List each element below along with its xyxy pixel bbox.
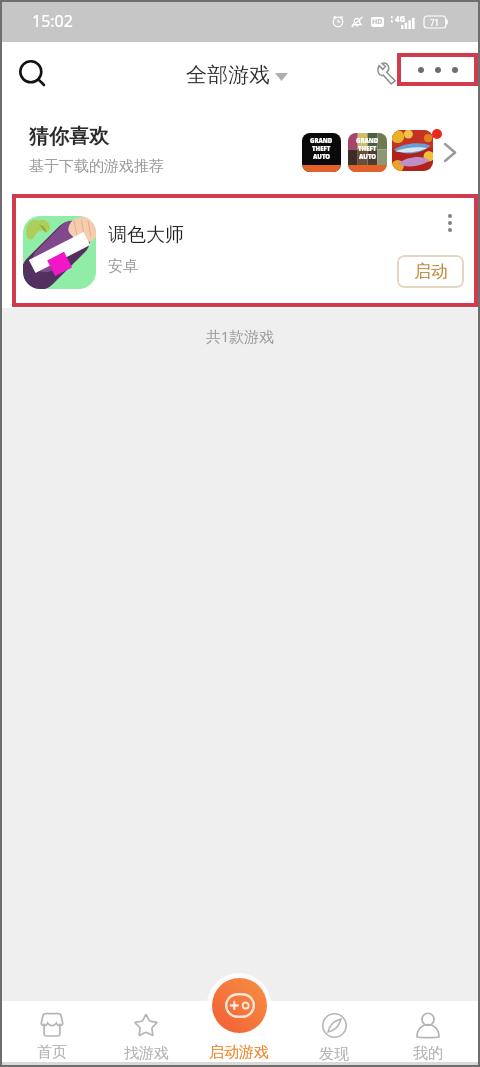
- staticText: 基于下载的游戏推荐: [29, 157, 164, 176]
- button[interactable]: 启动: [397, 255, 464, 288]
- button[interactable]: 我的: [381, 1001, 475, 1067]
- staticText: THEFT: [312, 145, 331, 153]
- button[interactable]: 首页: [5, 1001, 99, 1067]
- staticText: 4G: [395, 13, 406, 24]
- staticText: 安卓: [108, 257, 138, 276]
- button[interactable]: 发现: [287, 1001, 381, 1067]
- staticText: 71: [430, 17, 440, 28]
- button[interactable]: More: [435, 208, 465, 238]
- button[interactable]: Tools: [370, 56, 404, 90]
- staticText: 调色大师: [108, 223, 184, 247]
- button[interactable]: 找游戏: [99, 1001, 193, 1067]
- staticText: 启动游戏: [209, 1043, 269, 1062]
- button[interactable]: 调色大师: [0, 196, 480, 308]
- staticText: 发现: [319, 1045, 349, 1064]
- staticText: HD: [372, 17, 383, 27]
- staticText: 猜你喜欢: [29, 124, 109, 149]
- staticText: 共1款游戏: [0, 326, 480, 346]
- staticText: GRAND: [310, 137, 333, 145]
- staticText: AUTO: [313, 153, 331, 161]
- button[interactable]: More options: [397, 53, 478, 86]
- staticText: 启动: [414, 261, 448, 282]
- staticText: 全部游戏: [186, 62, 270, 88]
- staticText: 找游戏: [124, 1044, 169, 1063]
- staticText: AUTO: [359, 153, 377, 161]
- button[interactable]: 全部游戏: [186, 62, 288, 88]
- staticText: GRAND: [356, 137, 379, 145]
- staticText: 我的: [413, 1044, 443, 1063]
- button[interactable]: 启动游戏: [207, 973, 271, 1056]
- staticText: THEFT: [358, 145, 377, 153]
- staticText: 15:02: [32, 10, 73, 32]
- button[interactable]: Recommended games: [302, 130, 456, 174]
- staticText: 首页: [37, 1043, 67, 1062]
- button[interactable]: Search: [10, 51, 54, 95]
